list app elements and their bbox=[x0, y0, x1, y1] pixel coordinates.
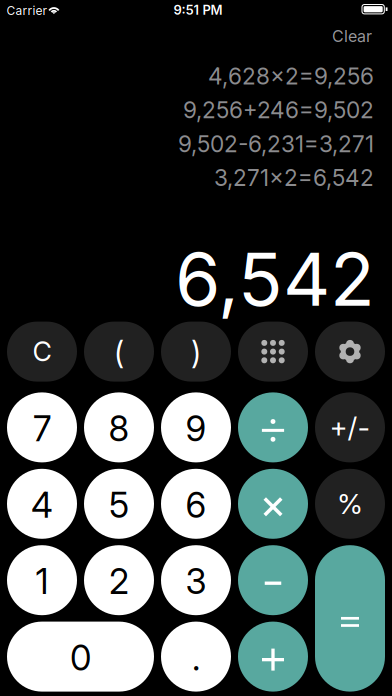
staticText: 3,271×2=6,542 bbox=[214, 164, 374, 191]
button[interactable] bbox=[161, 469, 231, 539]
staticText: 9 bbox=[185, 408, 206, 450]
staticText: +/- bbox=[329, 410, 370, 444]
staticText: 4,628×2=9,256 bbox=[208, 63, 374, 90]
button[interactable] bbox=[7, 545, 77, 615]
button[interactable]: Multiply bbox=[238, 469, 308, 539]
button[interactable] bbox=[161, 392, 231, 462]
staticText: Carrier bbox=[6, 3, 47, 18]
staticText: 2 bbox=[109, 560, 129, 602]
button[interactable]: Equals bbox=[315, 545, 385, 692]
button[interactable] bbox=[161, 322, 231, 382]
button[interactable] bbox=[84, 322, 154, 382]
staticText: Clear bbox=[332, 27, 372, 46]
button[interactable]: Clear bbox=[300, 21, 372, 51]
staticText: 6,542 bbox=[175, 235, 375, 323]
staticText: ( bbox=[114, 334, 124, 372]
staticText: 9,502-6,231=3,271 bbox=[178, 130, 374, 158]
staticText: 0 bbox=[70, 637, 91, 679]
button[interactable] bbox=[7, 392, 77, 462]
staticText: . bbox=[192, 637, 200, 679]
staticText: 3 bbox=[185, 560, 206, 602]
button[interactable]: Settings bbox=[315, 322, 385, 382]
staticText: % bbox=[337, 487, 363, 521]
staticText: 9,256+246=9,502 bbox=[183, 96, 374, 124]
staticText: 5 bbox=[109, 484, 129, 526]
button[interactable] bbox=[7, 469, 77, 539]
button[interactable] bbox=[84, 392, 154, 462]
staticText: 1 bbox=[35, 560, 48, 602]
staticText: 4 bbox=[31, 484, 53, 526]
button[interactable]: Keypad bbox=[238, 322, 308, 382]
staticText: 6 bbox=[185, 484, 206, 526]
staticText: ) bbox=[191, 334, 201, 372]
button[interactable] bbox=[7, 622, 154, 692]
staticText: 8 bbox=[108, 408, 129, 450]
button[interactable]: Subtract bbox=[238, 545, 308, 615]
staticText: 9:51 PM bbox=[173, 2, 222, 18]
button[interactable]: Add bbox=[238, 622, 308, 692]
button[interactable] bbox=[84, 545, 154, 615]
staticText: 7 bbox=[33, 408, 51, 450]
button[interactable] bbox=[315, 469, 385, 539]
button[interactable] bbox=[84, 469, 154, 539]
button[interactable] bbox=[7, 322, 77, 382]
staticText: C bbox=[32, 335, 51, 368]
button[interactable] bbox=[161, 545, 231, 615]
button[interactable] bbox=[161, 622, 231, 692]
button[interactable]: Divide bbox=[238, 392, 308, 462]
button[interactable] bbox=[315, 392, 385, 462]
